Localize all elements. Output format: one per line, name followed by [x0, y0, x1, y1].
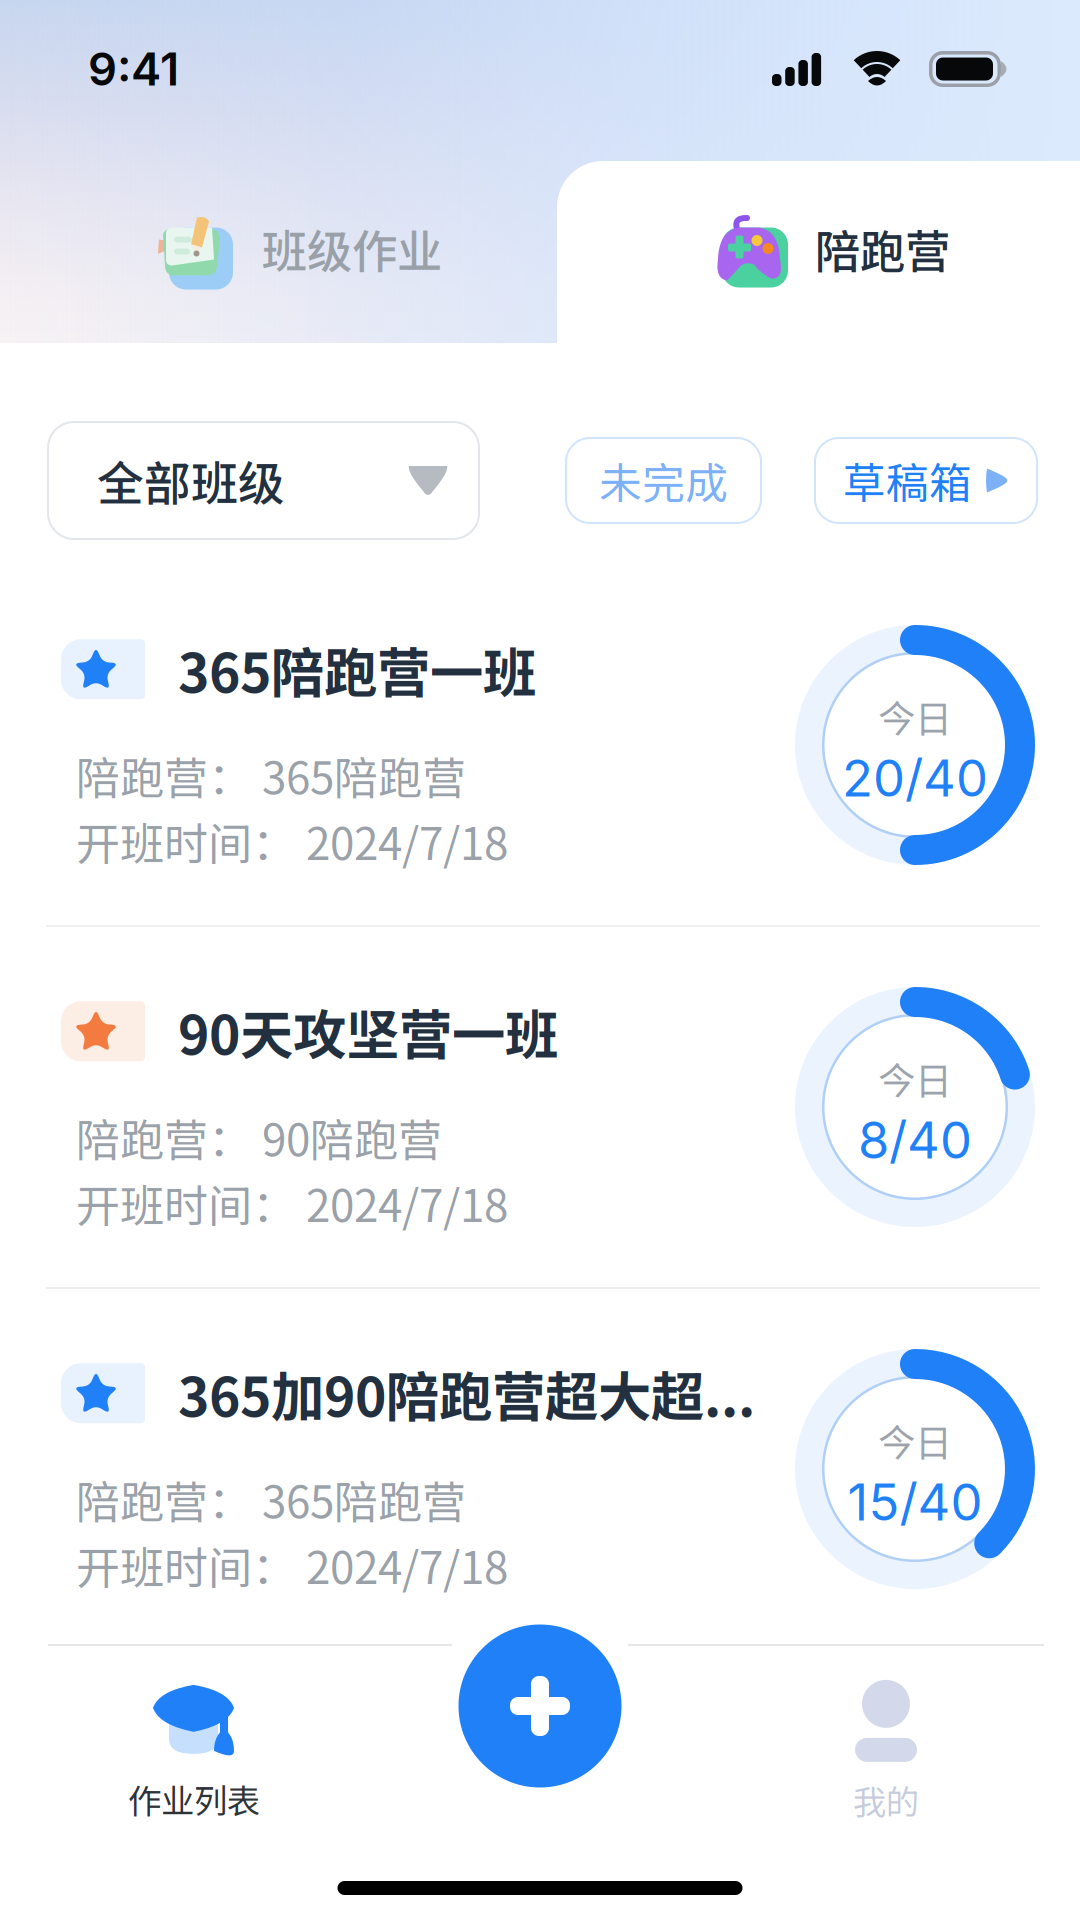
staticText: 365加90陪跑营超大超... [178, 1355, 755, 1432]
staticText: 全部班级 [97, 447, 285, 514]
staticText: 草稿箱 [843, 450, 972, 511]
staticText: 班级作业 [262, 216, 442, 281]
staticText: 开班时间： 2024/7/18 [76, 1533, 508, 1597]
staticText: 15/40 [847, 1471, 982, 1533]
staticText: 未完成 [599, 450, 728, 511]
staticText: 陪跑营： 365陪跑营 [76, 1467, 466, 1531]
button[interactable]: 草稿箱 [814, 437, 1038, 524]
staticText: 今日 [878, 1051, 952, 1105]
staticText: 今日 [878, 1413, 952, 1467]
button[interactable]: 我的 [692, 1662, 1080, 1842]
staticText: 陪跑营： 365陪跑营 [76, 743, 466, 807]
staticText: 我的 [853, 1776, 919, 1824]
button[interactable]: 365加90陪跑营超大超... [0, 1289, 1080, 1649]
button[interactable]: 365陪跑营一班 [0, 565, 1080, 925]
button[interactable]: 班级作业 [0, 118, 557, 355]
staticText: 365陪跑营一班 [178, 631, 536, 708]
staticText: 陪跑营 [815, 216, 950, 281]
button[interactable]: 作业列表 [0, 1662, 388, 1842]
staticText: 20/40 [842, 747, 988, 809]
staticText: 开班时间： 2024/7/18 [76, 1171, 508, 1235]
staticText: 90天攻坚营一班 [178, 993, 558, 1070]
button[interactable]: Add [433, 1599, 647, 1813]
button[interactable]: 未完成 [565, 437, 762, 524]
staticText: 8/40 [858, 1109, 972, 1171]
staticText: 今日 [878, 689, 952, 743]
staticText: 9:41 [88, 42, 179, 96]
staticText: 陪跑营： 90陪跑营 [76, 1105, 442, 1169]
staticText: 开班时间： 2024/7/18 [76, 809, 508, 873]
button[interactable]: 全部班级 [47, 421, 480, 540]
button[interactable]: 90天攻坚营一班 [0, 927, 1080, 1287]
staticText: 作业列表 [128, 1775, 260, 1823]
button[interactable]: 陪跑营 [557, 118, 1080, 355]
